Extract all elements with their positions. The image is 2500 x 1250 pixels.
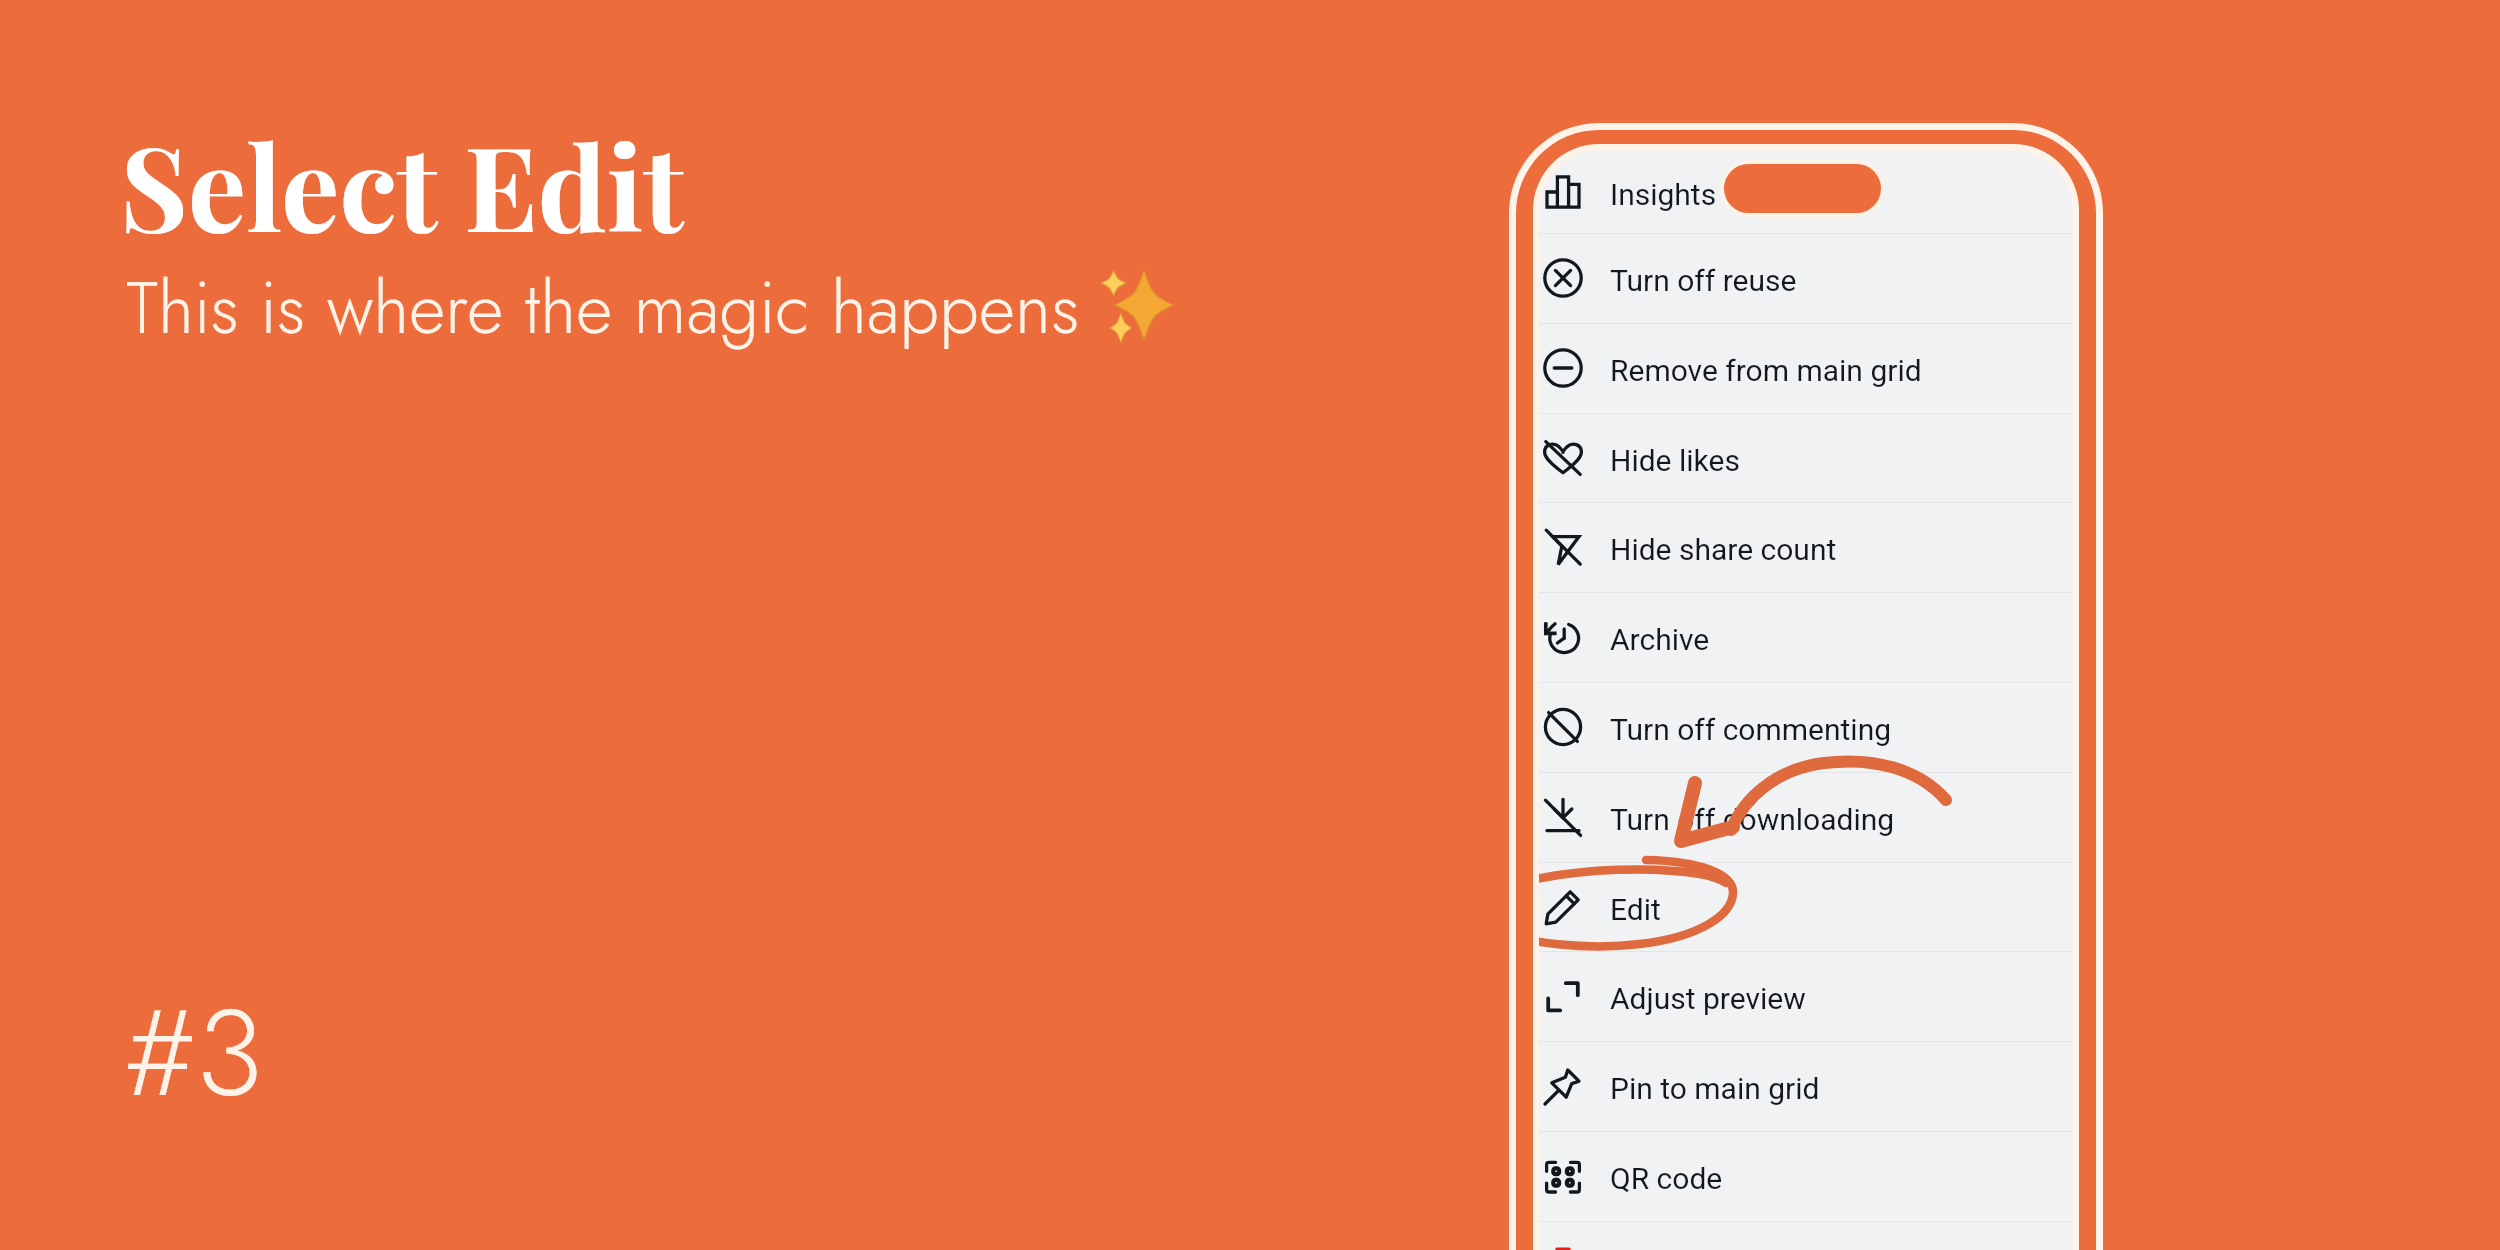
staticText: Pin to main grid <box>1610 1071 1820 1106</box>
button[interactable]: Remove from main grid <box>1539 323 2073 413</box>
staticText: Remove from main grid <box>1610 353 1922 388</box>
button[interactable]: Insights <box>1539 151 2073 233</box>
button[interactable]: Hide likes <box>1539 413 2073 503</box>
button[interactable]: Archive <box>1539 592 2073 682</box>
staticText: Adjust preview <box>1610 981 1806 1016</box>
staticText: Insights <box>1610 177 1717 212</box>
button[interactable]: Turn off downloading <box>1539 772 2073 862</box>
staticText: Hide likes <box>1610 443 1740 478</box>
button[interactable]: Adjust preview <box>1539 951 2073 1041</box>
button[interactable]: Delete <box>1539 1221 2073 1250</box>
button[interactable]: Turn off reuse <box>1539 233 2073 323</box>
staticText: Archive <box>1610 622 1710 657</box>
staticText: #3 <box>124 964 263 1140</box>
button[interactable]: QR code <box>1539 1131 2073 1221</box>
staticText: Turn off commenting <box>1610 712 1892 747</box>
staticText: Turn off downloading <box>1610 802 1895 837</box>
button[interactable]: Pin to main grid <box>1539 1041 2073 1131</box>
button[interactable]: Hide share count <box>1539 502 2073 592</box>
staticText: QR code <box>1610 1161 1723 1196</box>
button[interactable]: Edit <box>1539 862 2073 952</box>
staticText: Hide share count <box>1610 532 1837 567</box>
staticText: Turn off reuse <box>1610 263 1797 298</box>
button[interactable]: Turn off commenting <box>1539 682 2073 772</box>
staticText: Select Edit <box>120 106 685 261</box>
staticText: Edit <box>1610 892 1661 927</box>
staticText: This is where the magic happens <box>126 257 1080 360</box>
